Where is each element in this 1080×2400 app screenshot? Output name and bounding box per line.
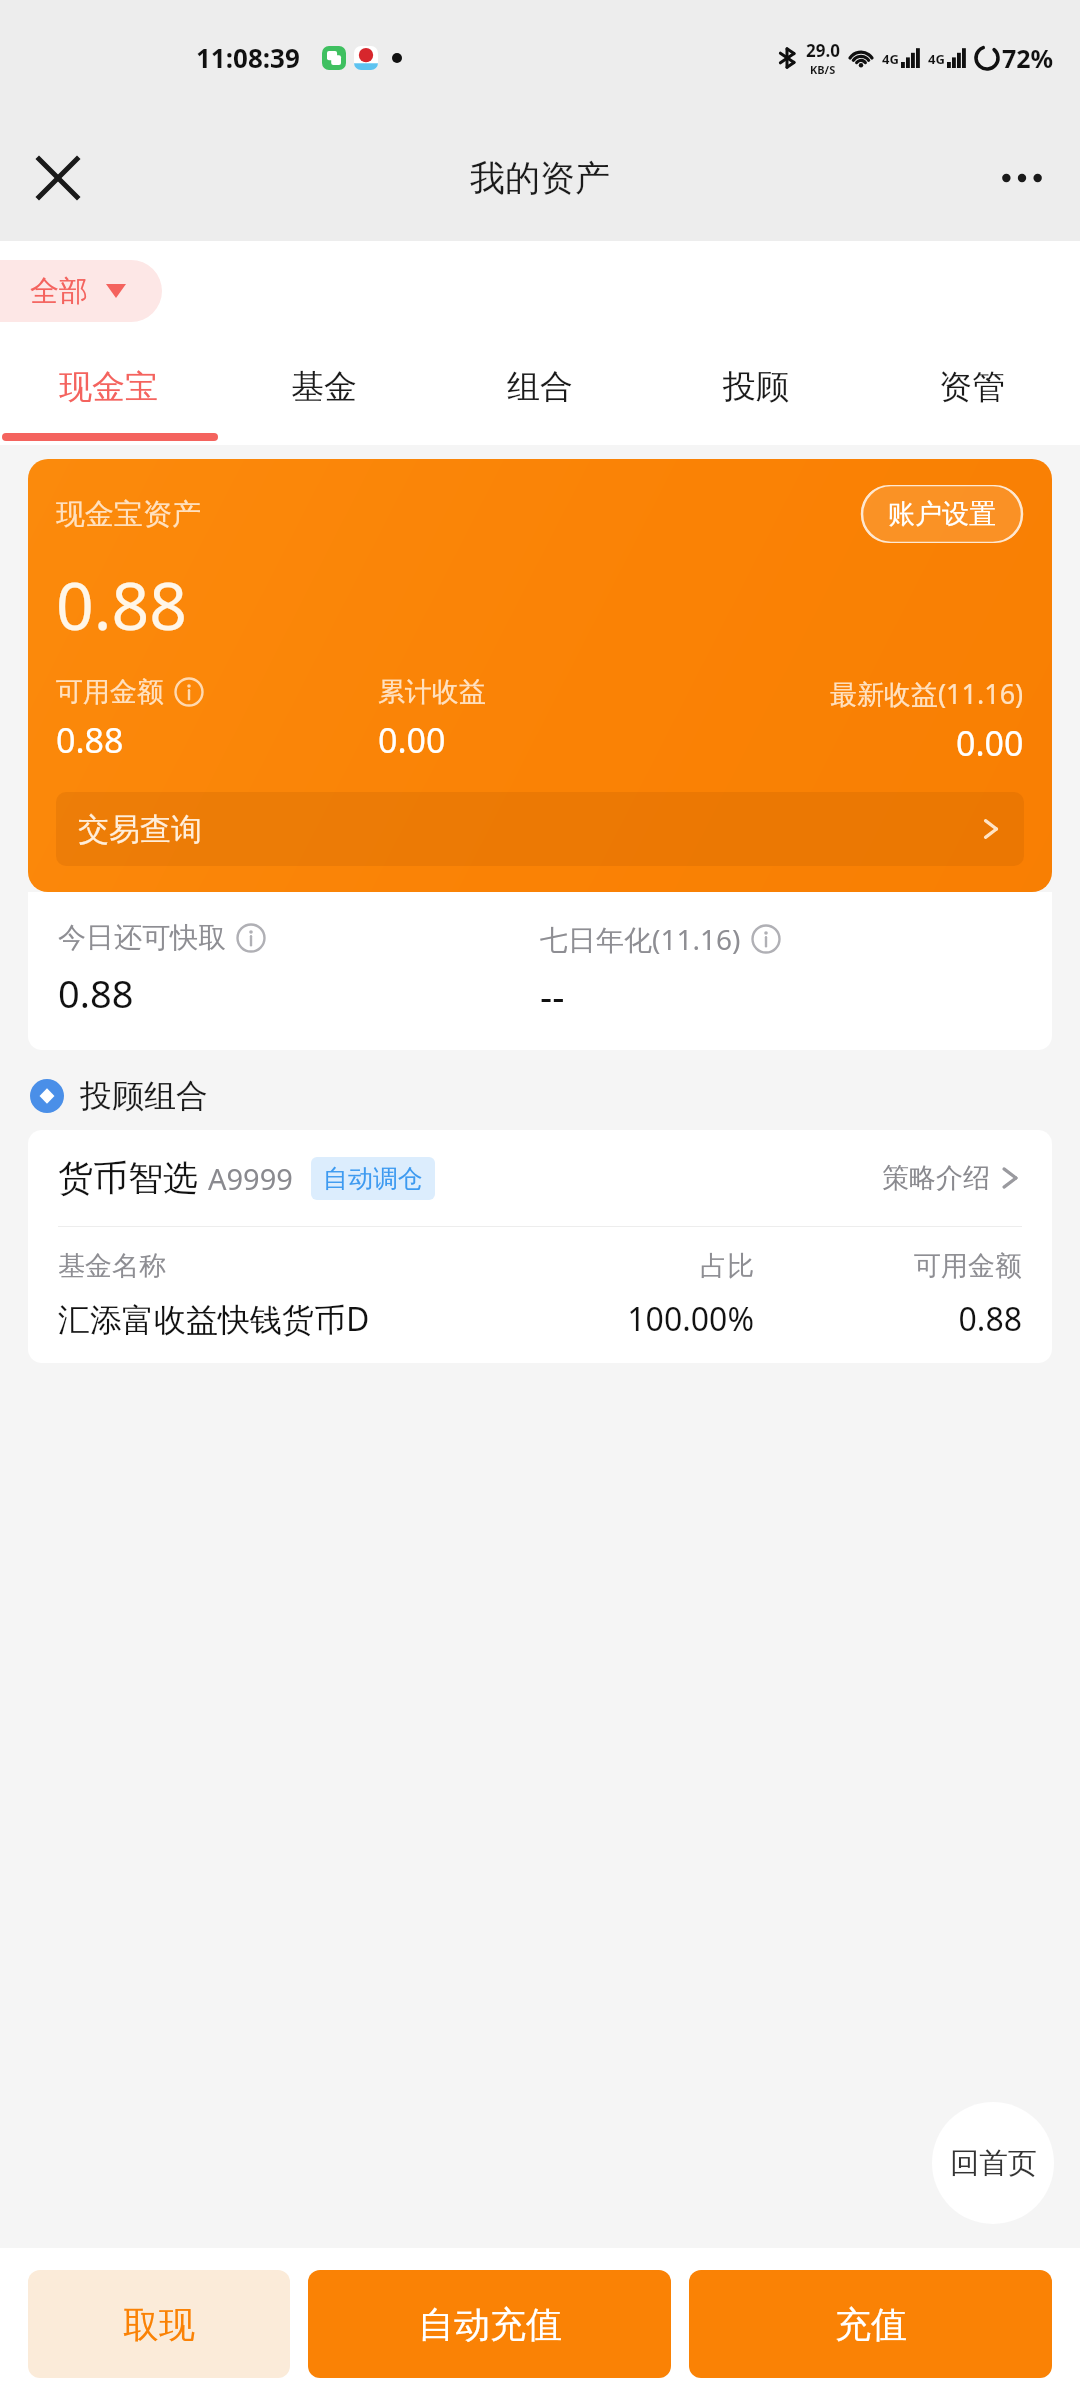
staticText: 七日年化(11.16) xyxy=(540,920,741,958)
staticText: 全部 xyxy=(30,273,88,310)
button[interactable]: 充值 xyxy=(689,2270,1052,2378)
staticText: 可用金额 xyxy=(754,1249,1022,1283)
staticText: 72% xyxy=(1002,41,1054,75)
staticText: 基金 xyxy=(291,366,357,408)
staticText: 自动充值 xyxy=(418,2302,562,2347)
staticText: 组合 xyxy=(507,366,573,408)
button[interactable]: 交易查询 xyxy=(56,792,1024,866)
staticText: 现金宝 xyxy=(59,366,158,408)
staticText: 今日还可快取 xyxy=(58,920,226,955)
button[interactable]: 组合 xyxy=(432,341,648,433)
staticText: 100.00% xyxy=(486,1297,754,1341)
staticText: 0.00 xyxy=(956,720,1024,766)
staticText: 0.88 xyxy=(56,559,187,649)
staticText: 投顾组合 xyxy=(80,1076,208,1116)
staticText: 取现 xyxy=(123,2302,195,2347)
staticText: 累计收益 xyxy=(378,675,486,709)
button[interactable]: 基金 xyxy=(216,341,432,433)
staticText: 充值 xyxy=(835,2302,907,2347)
staticText: -- xyxy=(540,970,565,1022)
staticText: 基金名称 xyxy=(58,1249,486,1283)
button[interactable]: Close xyxy=(22,142,94,214)
button[interactable]: More options xyxy=(986,142,1058,214)
staticText: 资管 xyxy=(939,366,1005,408)
staticText: 0.88 xyxy=(58,967,134,1019)
staticText: 4G xyxy=(882,50,899,68)
staticText: 可用金额 xyxy=(56,675,164,709)
staticText: 汇添富收益快钱货币D xyxy=(58,1297,486,1341)
staticText: 29.0 xyxy=(806,39,840,62)
staticText: 0.88 xyxy=(56,717,124,763)
staticText: KB/S xyxy=(810,62,836,77)
staticText: A9999 xyxy=(208,1159,293,1198)
button[interactable]: 全部 xyxy=(0,260,162,322)
staticText: 0.88 xyxy=(754,1297,1022,1341)
button[interactable]: 投顾 xyxy=(648,341,864,433)
staticText: 投顾 xyxy=(723,366,789,408)
staticText: 货币智选 xyxy=(58,1156,198,1200)
staticText: 我的资产 xyxy=(470,156,610,200)
staticText: 回首页 xyxy=(950,2145,1037,2182)
staticText: 最新收益(11.16) xyxy=(830,675,1024,712)
staticText: 账户设置 xyxy=(888,497,996,531)
staticText: 占比 xyxy=(486,1249,754,1283)
button[interactable]: 现金宝 xyxy=(0,341,216,433)
button[interactable]: 资管 xyxy=(864,341,1080,433)
staticText: 11:08:39 xyxy=(196,40,300,75)
staticText: 0.00 xyxy=(378,717,446,763)
button[interactable]: 账户设置 xyxy=(860,485,1024,543)
button[interactable]: 取现 xyxy=(28,2270,290,2378)
button[interactable]: 自动充值 xyxy=(308,2270,671,2378)
staticText: 交易查询 xyxy=(78,810,202,849)
button[interactable]: 回首页 xyxy=(932,2102,1054,2224)
staticText: 自动调仓 xyxy=(323,1163,423,1194)
staticText: 4G xyxy=(928,50,945,68)
staticText: 现金宝资产 xyxy=(56,496,201,533)
button[interactable]: 货币智选 xyxy=(28,1130,1052,1363)
staticText: 策略介绍 xyxy=(882,1161,990,1195)
